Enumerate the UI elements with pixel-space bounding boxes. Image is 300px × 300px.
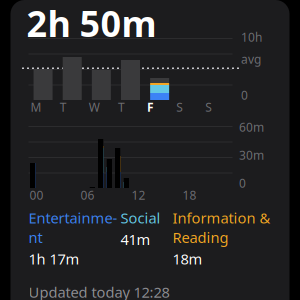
staticText: 2h 50m [26,0,156,47]
staticText: 10h [241,29,262,45]
staticText: Entertainment [28,208,117,247]
staticText: W [89,99,100,115]
staticText: 0 [239,175,246,191]
staticText: S [176,99,183,115]
staticText: M [30,99,41,115]
staticText: S [205,99,212,115]
staticText: F [147,99,154,115]
staticText: 1h 17m [28,249,79,268]
staticText: 18 [182,187,196,203]
staticText: avg [241,51,261,67]
staticText: 06 [80,187,94,203]
staticText: 30m [239,147,264,163]
staticText: Updated today 12:28 [28,282,169,300]
staticText: 60m [239,119,264,135]
staticText: T [60,99,67,115]
staticText: 12 [131,187,145,203]
staticText: Social [120,208,160,227]
staticText: 18m [172,249,202,268]
staticText: Information & Reading [172,208,270,247]
staticText: 00 [29,187,43,203]
staticText: T [118,99,125,115]
staticText: 41m [120,229,150,249]
staticText: 0 [241,87,248,103]
